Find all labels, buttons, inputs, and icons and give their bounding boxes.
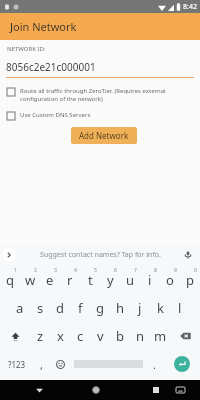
button[interactable]: y <box>100 266 120 294</box>
button[interactable]: o <box>160 266 180 294</box>
button[interactable]: q <box>0 266 20 294</box>
button[interactable]: . <box>146 350 163 378</box>
button[interactable]: i <box>140 266 160 294</box>
staticText: y <box>107 271 114 289</box>
staticText: j <box>138 299 142 317</box>
staticText: 4 <box>74 267 77 274</box>
staticText: 1 <box>14 267 17 274</box>
button[interactable]: Home <box>81 380 111 400</box>
staticText: v <box>97 327 104 345</box>
button[interactable]: Add Network <box>71 127 137 144</box>
staticText: , <box>40 357 43 372</box>
button[interactable]: l <box>170 294 190 322</box>
staticText: l <box>178 299 182 317</box>
button[interactable]: Back <box>24 380 54 400</box>
button[interactable]: Keyboard <box>168 380 193 400</box>
button[interactable]: x <box>50 322 70 350</box>
button[interactable]: d <box>50 294 70 322</box>
button[interactable]: b <box>110 322 130 350</box>
staticText: d <box>56 299 64 317</box>
staticText: o <box>166 271 174 289</box>
button[interactable]: a <box>10 294 30 322</box>
button[interactable]: Route all traffic through ZeroTier. (Req… <box>0 85 200 105</box>
staticText: e <box>46 271 54 289</box>
button[interactable]: v <box>90 322 110 350</box>
button[interactable]: 8056c2e21c000001 <box>6 60 194 78</box>
button[interactable]: s <box>30 294 50 322</box>
staticText: f <box>78 299 83 317</box>
staticText: Route all traffic through ZeroTier. (Req… <box>20 87 166 103</box>
button[interactable]: , <box>33 350 50 378</box>
button[interactable]: m <box>150 322 170 350</box>
button[interactable]: p <box>180 266 200 294</box>
button[interactable]: Shift <box>0 322 30 350</box>
staticText: g <box>96 299 104 317</box>
button[interactable]: ?123 <box>0 350 33 378</box>
button[interactable]: g <box>90 294 110 322</box>
staticText: Suggest contact names? Tap for info. <box>40 250 161 260</box>
staticText: 6 <box>114 267 117 274</box>
staticText: 2 <box>34 267 37 274</box>
button[interactable]: Enter <box>163 350 200 378</box>
staticText: 8056c2e21c000001 <box>6 60 96 74</box>
button[interactable]: j <box>130 294 150 322</box>
staticText: b <box>116 327 124 345</box>
staticText: w <box>25 271 36 289</box>
button[interactable]: w <box>20 266 40 294</box>
staticText: NETWORK ID: <box>7 45 46 53</box>
button[interactable]: h <box>110 294 130 322</box>
staticText: 9 <box>174 267 177 274</box>
button[interactable]: Expand suggestions <box>2 248 16 262</box>
button[interactable]: Voice input <box>181 248 195 262</box>
button[interactable]: e <box>40 266 60 294</box>
staticText: q <box>6 271 14 289</box>
staticText: 7 <box>134 267 137 274</box>
button[interactable]: c <box>70 322 90 350</box>
staticText: i <box>148 271 152 289</box>
staticText: c <box>77 327 84 345</box>
staticText: n <box>136 327 145 345</box>
staticText: 5 <box>94 267 97 274</box>
button[interactable]: r <box>60 266 80 294</box>
button[interactable]: Recent apps <box>143 380 168 400</box>
staticText: Use Custom DNS Servers <box>20 111 91 119</box>
button[interactable]: u <box>120 266 140 294</box>
staticText: 8:42 <box>183 2 197 12</box>
button[interactable]: Emoji <box>50 350 71 378</box>
button[interactable]: n <box>130 322 150 350</box>
button[interactable]: k <box>150 294 170 322</box>
staticText: k <box>157 299 164 317</box>
staticText: 0 <box>194 267 197 274</box>
staticText: ?123 <box>8 359 26 370</box>
staticText: Join Network <box>10 19 77 34</box>
staticText: 8 <box>154 267 157 274</box>
button[interactable]: t <box>80 266 100 294</box>
staticText: . <box>153 357 156 372</box>
button[interactable]: Backspace <box>170 322 200 350</box>
staticText: 3 <box>54 267 57 274</box>
staticText: a <box>16 299 24 317</box>
staticText: m <box>154 327 167 345</box>
staticText: t <box>88 271 93 289</box>
staticText: p <box>186 271 194 289</box>
button[interactable]: z <box>30 322 50 350</box>
staticText: r <box>67 271 73 289</box>
staticText: x <box>57 327 64 345</box>
staticText: s <box>37 299 44 317</box>
staticText: u <box>126 271 135 289</box>
staticText: h <box>116 299 125 317</box>
button[interactable]: Use Custom DNS Servers <box>0 109 200 121</box>
button[interactable]: Space <box>71 350 146 378</box>
staticText: z <box>37 327 44 345</box>
button[interactable]: f <box>70 294 90 322</box>
staticText: Add Network <box>79 130 129 141</box>
